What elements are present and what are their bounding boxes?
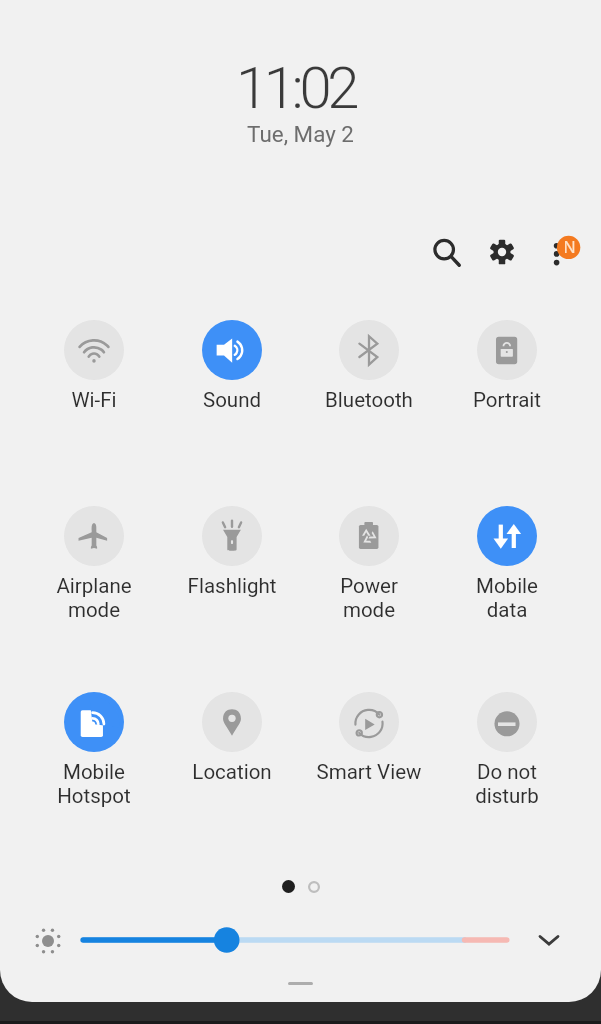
staticText: Mobile Hotspot bbox=[35, 760, 153, 808]
staticText: 11:02 bbox=[0, 54, 596, 122]
staticText: Smart View bbox=[310, 760, 428, 784]
button[interactable]: Sound bbox=[173, 320, 291, 412]
staticText: Portrait bbox=[448, 388, 566, 412]
button[interactable]: Search bbox=[422, 228, 470, 276]
button[interactable]: Airplane mode bbox=[35, 506, 153, 622]
button[interactable]: Page 2 bbox=[308, 881, 320, 893]
staticText: Mobile data bbox=[448, 574, 566, 622]
button[interactable]: Wi-Fi bbox=[35, 320, 153, 412]
button[interactable]: Brightness slider bbox=[71, 926, 519, 954]
button[interactable]: Flashlight bbox=[173, 506, 291, 598]
button[interactable]: Brightness bbox=[30, 923, 66, 959]
button[interactable]: Location bbox=[173, 692, 291, 784]
staticText: Sound bbox=[173, 388, 291, 412]
staticText: Location bbox=[173, 760, 291, 784]
button[interactable]: Smart View bbox=[310, 692, 428, 784]
staticText: Power mode bbox=[310, 574, 428, 622]
button[interactable]: Page 1 bbox=[282, 880, 295, 893]
staticText: Wi-Fi bbox=[35, 388, 153, 412]
staticText: Flashlight bbox=[173, 574, 291, 598]
staticText: Do not disturb bbox=[448, 760, 566, 808]
button[interactable]: Mobile data bbox=[448, 506, 566, 622]
button[interactable]: Do not disturb bbox=[448, 692, 566, 808]
staticText: N bbox=[563, 236, 576, 258]
button[interactable]: Expand quick settings bbox=[529, 920, 569, 960]
staticText: Airplane mode bbox=[35, 574, 153, 622]
button[interactable]: Settings bbox=[478, 228, 526, 276]
staticText: Bluetooth bbox=[310, 388, 428, 412]
staticText: Tue, May 2 bbox=[0, 121, 601, 147]
button[interactable]: Mobile Hotspot bbox=[35, 692, 153, 808]
button[interactable]: Collapse panel bbox=[288, 982, 313, 985]
button[interactable]: More options bbox=[534, 227, 582, 275]
button[interactable]: Bluetooth bbox=[310, 320, 428, 412]
button[interactable]: Portrait bbox=[448, 320, 566, 412]
button[interactable]: Power mode bbox=[310, 506, 428, 622]
